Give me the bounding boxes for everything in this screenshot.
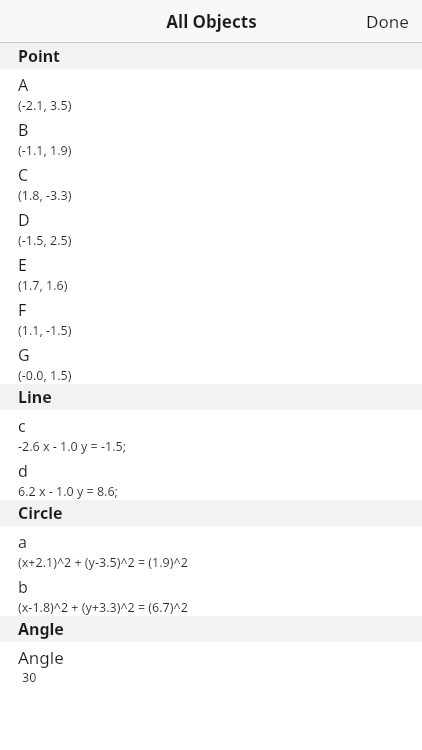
staticText: 6.2 x - 1.0 y = 8.6; — [18, 483, 118, 500]
button[interactable]: F — [0, 294, 422, 339]
button[interactable]: B — [0, 114, 422, 159]
button[interactable]: Angle — [0, 642, 422, 687]
button[interactable]: d — [0, 455, 422, 500]
staticText: (-0.0, 1.5) — [18, 367, 72, 384]
staticText: D — [18, 209, 30, 231]
staticText: Point — [18, 45, 61, 67]
staticText: (1.7, 1.6) — [18, 277, 68, 294]
staticText: F — [18, 299, 27, 321]
staticText: b — [18, 576, 28, 598]
staticText: E — [18, 254, 27, 276]
button[interactable]: D — [0, 204, 422, 249]
staticText: (x+2.1)^2 + (y-3.5)^2 = (1.9)^2 — [18, 554, 188, 571]
staticText: (-1.1, 1.9) — [18, 142, 72, 159]
staticText: a — [18, 531, 27, 553]
button[interactable]: G — [0, 339, 422, 384]
button[interactable]: b — [0, 571, 422, 616]
staticText: (1.8, -3.3) — [18, 187, 72, 204]
staticText: Angle — [18, 618, 64, 640]
staticText: d — [18, 460, 28, 482]
button[interactable]: C — [0, 159, 422, 204]
button[interactable]: c — [0, 410, 422, 455]
staticText: (x-1.8)^2 + (y+3.3)^2 = (6.7)^2 — [18, 599, 188, 616]
button[interactable]: a — [0, 526, 422, 571]
staticText: Done — [366, 10, 409, 33]
staticText: (1.1, -1.5) — [18, 322, 72, 339]
staticText: A — [18, 74, 29, 96]
staticText: Angle — [18, 646, 64, 669]
button[interactable]: E — [0, 249, 422, 294]
staticText: c — [18, 415, 26, 437]
staticText: Circle — [18, 502, 63, 524]
staticText: 30 — [22, 669, 37, 686]
staticText: Line — [18, 386, 52, 408]
staticText: G — [18, 344, 30, 366]
staticText: C — [18, 164, 29, 186]
staticText: All Objects — [166, 10, 257, 33]
staticText: -2.6 x - 1.0 y = -1.5; — [18, 438, 127, 455]
button[interactable]: Done — [353, 2, 422, 41]
staticText: (-1.5, 2.5) — [18, 232, 72, 249]
button[interactable]: A — [0, 69, 422, 114]
staticText: (-2.1, 3.5) — [18, 97, 72, 114]
staticText: B — [18, 119, 29, 141]
